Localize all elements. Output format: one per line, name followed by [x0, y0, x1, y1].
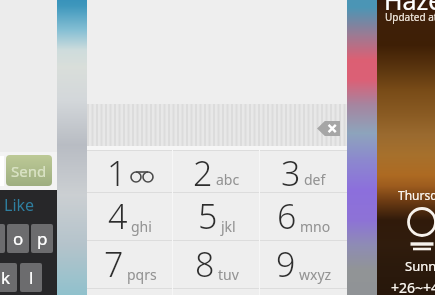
button[interactable]: i [0, 224, 5, 253]
button[interactable]: * [87, 288, 173, 295]
button[interactable]: p [31, 224, 53, 253]
button[interactable]: 1 [87, 150, 173, 192]
button[interactable]: 6 [260, 192, 347, 240]
staticText: wxyz [299, 265, 332, 284]
staticText: Thursd [398, 187, 435, 203]
staticText: 3 [281, 150, 301, 192]
staticText: 7 [104, 241, 124, 287]
button[interactable]: 9 [260, 240, 347, 288]
button[interactable]: # [260, 288, 347, 295]
staticText: 2 [193, 150, 213, 192]
staticText: abc [216, 170, 240, 189]
staticText: 6 [277, 193, 297, 239]
staticText: Updated at W [385, 10, 435, 24]
button[interactable]: Backspace [317, 121, 340, 136]
staticText: 9 [276, 241, 296, 287]
staticText: tuv [218, 265, 239, 284]
button[interactable]: 4 [87, 192, 173, 240]
staticText: pqrs [127, 265, 157, 284]
staticText: def [304, 170, 326, 189]
staticText: ghi [131, 217, 152, 236]
staticText: mno [300, 217, 331, 236]
button[interactable]: k [0, 263, 17, 292]
button[interactable]: 3 [260, 150, 347, 192]
staticText: l [29, 266, 34, 289]
staticText: p [37, 227, 48, 250]
button[interactable]: 0 [173, 288, 260, 295]
button[interactable]: o [7, 224, 29, 253]
button[interactable]: 2 [173, 150, 260, 192]
button[interactable]: 5 [173, 192, 260, 240]
staticText: +26~+41 [391, 278, 435, 295]
staticText: o [13, 227, 24, 250]
staticText: 8 [195, 241, 215, 287]
staticText: Haze [384, 0, 435, 17]
staticText: 5 [198, 193, 218, 239]
staticText: Send [11, 161, 47, 181]
button[interactable]: Send [6, 155, 52, 186]
staticText: 4 [108, 193, 128, 239]
staticText: k [1, 266, 11, 289]
staticText: Like [4, 194, 35, 216]
staticText: 1 [107, 150, 127, 192]
button[interactable]: 8 [173, 240, 260, 288]
staticText: Sunny [405, 257, 435, 275]
staticText: jkl [221, 217, 236, 236]
button[interactable]: l [20, 263, 42, 292]
button[interactable]: 7 [87, 240, 173, 288]
